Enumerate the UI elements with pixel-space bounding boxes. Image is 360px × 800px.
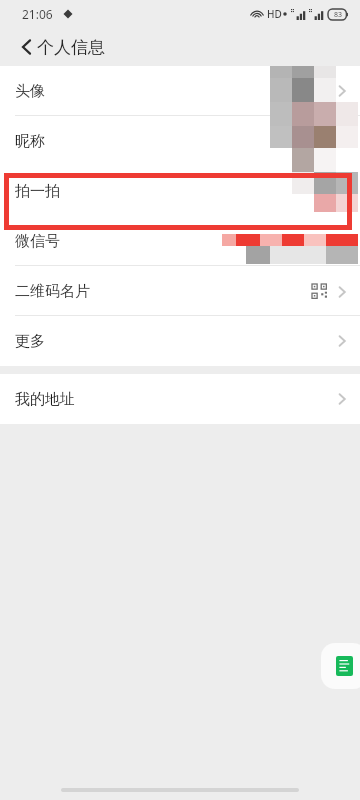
- staticText: HD: [267, 7, 282, 21]
- button[interactable]: 昵称: [0, 116, 360, 166]
- button[interactable]: Notes: [321, 643, 360, 689]
- staticText: 昵称: [15, 132, 45, 151]
- staticText: 更多: [15, 332, 45, 351]
- staticText: 21:06: [22, 6, 53, 22]
- staticText: 我的地址: [15, 390, 75, 409]
- staticText: 个人信息: [37, 37, 105, 58]
- button[interactable]: 更多: [0, 316, 360, 366]
- staticText: 微信号: [15, 232, 60, 251]
- staticText: 二维码名片: [15, 282, 90, 301]
- button[interactable]: 拍一拍: [0, 166, 360, 216]
- staticText: 头像: [15, 82, 45, 101]
- button[interactable]: Back: [8, 29, 44, 65]
- button[interactable]: 头像: [0, 66, 360, 116]
- button[interactable]: 微信号: [0, 216, 360, 266]
- staticText: 拍一拍: [15, 182, 60, 201]
- button[interactable]: 我的地址: [0, 374, 360, 424]
- staticText: 83: [334, 10, 343, 20]
- button[interactable]: 二维码名片: [0, 266, 360, 316]
